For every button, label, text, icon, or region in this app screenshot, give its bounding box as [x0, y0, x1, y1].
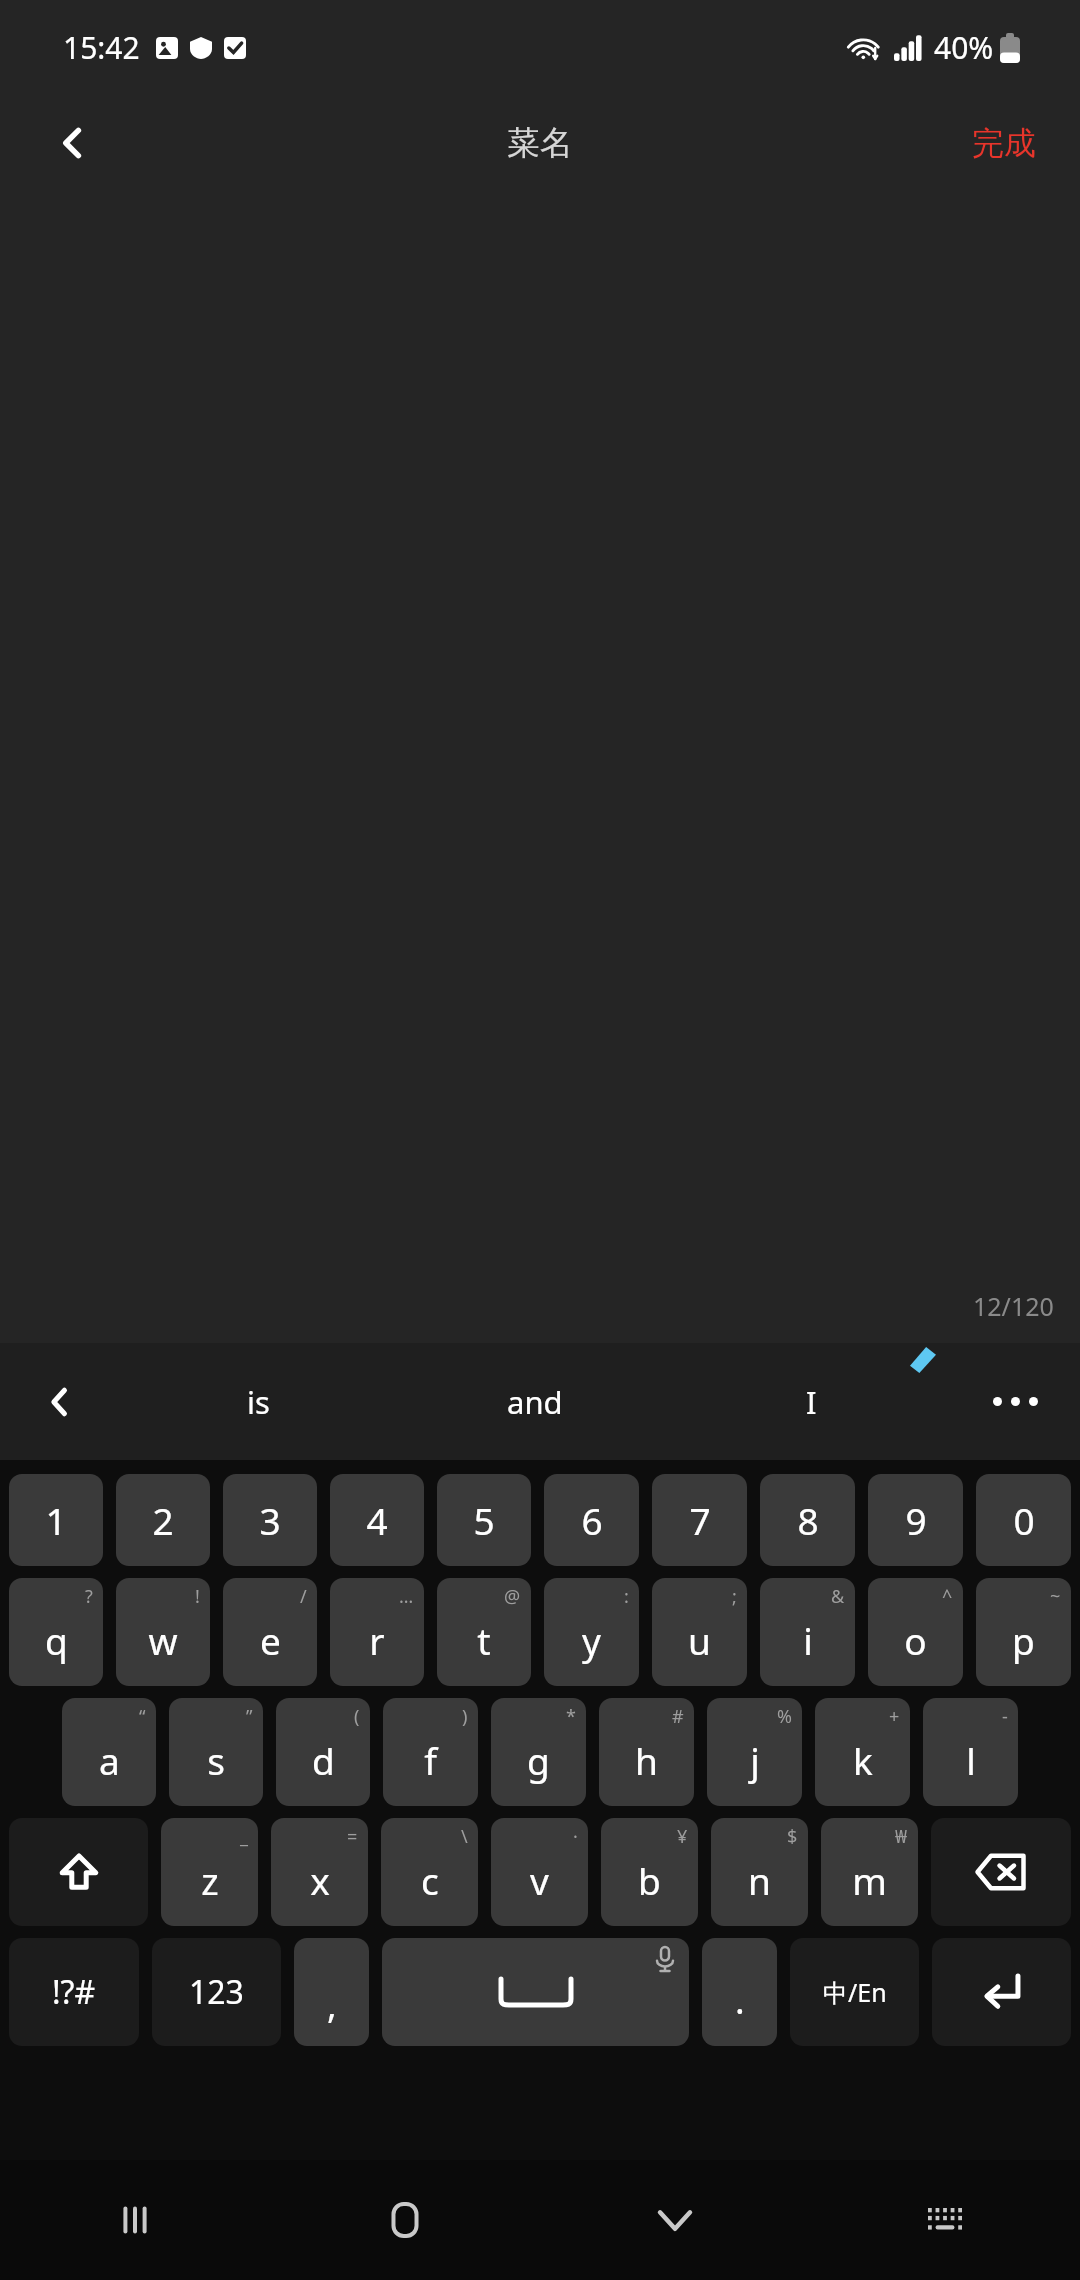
button[interactable]: 完成 [958, 113, 1050, 173]
staticText: u [688, 1615, 711, 1665]
staticText: 中/En [823, 1975, 887, 2009]
staticText: / [300, 1584, 307, 1609]
staticText: · [573, 1824, 578, 1849]
button[interactable]: ; [652, 1578, 747, 1686]
staticText: p [1012, 1615, 1035, 1665]
staticText: & [831, 1584, 845, 1609]
staticText: . [735, 1976, 745, 2025]
button[interactable]: 2 [116, 1474, 210, 1566]
button[interactable]: Period [702, 1938, 777, 2046]
button[interactable]: 9 [868, 1474, 963, 1566]
staticText: ~ [1050, 1584, 1061, 1609]
button[interactable]: 1 [9, 1474, 103, 1566]
button[interactable]: 3 [223, 1474, 317, 1566]
button[interactable]: Back [40, 110, 106, 176]
button[interactable]: = [271, 1818, 368, 1926]
button[interactable]: 中/En [790, 1938, 919, 2046]
staticText: = [347, 1824, 358, 1849]
button[interactable]: : [544, 1578, 639, 1686]
staticText: 6 [581, 1495, 603, 1545]
staticText: 9 [905, 1495, 927, 1545]
button[interactable]: ₩ [821, 1818, 918, 1926]
staticText: I [806, 1381, 817, 1423]
staticText: t [477, 1615, 491, 1665]
button[interactable]: and [396, 1343, 673, 1460]
button[interactable]: ^ [868, 1578, 963, 1686]
button[interactable]: 123 [152, 1938, 281, 2046]
staticText: 菜名 [507, 122, 573, 164]
staticText: g [527, 1735, 550, 1785]
button[interactable]: Backspace [931, 1818, 1071, 1926]
button[interactable]: ( [276, 1698, 370, 1806]
staticText: 123 [189, 1970, 244, 2014]
staticText: 40% [934, 27, 994, 68]
staticText: ) [462, 1704, 468, 1729]
staticText: b [638, 1855, 661, 1905]
button[interactable]: Shift [9, 1818, 148, 1926]
button[interactable]: # [599, 1698, 694, 1806]
button[interactable]: \ [381, 1818, 478, 1926]
button[interactable]: is [120, 1343, 396, 1460]
staticText: - [1002, 1704, 1008, 1729]
staticText: r [369, 1615, 385, 1665]
button[interactable]: 7 [652, 1474, 747, 1566]
button[interactable]: 4 [330, 1474, 424, 1566]
button[interactable]: ) [383, 1698, 478, 1806]
staticText: 完成 [972, 123, 1036, 163]
button[interactable]: Home [270, 2160, 540, 2280]
staticText: ? [85, 1584, 93, 1609]
button[interactable]: Hide keyboard [540, 2160, 810, 2280]
button[interactable]: More options [950, 1343, 1080, 1460]
button[interactable]: Change keyboard [810, 2160, 1080, 2280]
staticText: 2 [152, 1495, 174, 1545]
staticText: _ [240, 1824, 248, 1849]
button[interactable]: Previous [0, 1343, 120, 1460]
button[interactable]: ? [9, 1578, 103, 1686]
button[interactable]: Recent apps [0, 2160, 270, 2280]
staticText: d [312, 1735, 335, 1785]
button[interactable]: $ [711, 1818, 808, 1926]
staticText: # [672, 1704, 684, 1729]
button[interactable]: & [760, 1578, 855, 1686]
staticText: 12/120 [973, 1289, 1054, 1323]
button[interactable]: Enter [932, 1938, 1071, 2046]
button[interactable]: … [330, 1578, 424, 1686]
staticText: , [327, 1980, 337, 2029]
button[interactable]: ~ [976, 1578, 1071, 1686]
staticText: and [507, 1381, 563, 1423]
button[interactable]: - [923, 1698, 1018, 1806]
staticText: % [777, 1704, 792, 1729]
staticText: !?# [52, 1970, 96, 2014]
button[interactable]: Comma [294, 1938, 369, 2046]
button[interactable]: ” [169, 1698, 263, 1806]
staticText: x [310, 1855, 330, 1905]
button[interactable]: % [707, 1698, 802, 1806]
button[interactable]: ! [116, 1578, 210, 1686]
staticText: o [904, 1615, 927, 1665]
button[interactable]: !?# [9, 1938, 139, 2046]
button[interactable]: 5 [437, 1474, 531, 1566]
staticText: : [624, 1584, 629, 1609]
staticText: 3 [259, 1495, 281, 1545]
staticText: ! [195, 1584, 200, 1609]
staticText: q [45, 1615, 68, 1665]
button[interactable]: Space [382, 1938, 689, 2046]
button[interactable]: @ [437, 1578, 531, 1686]
button[interactable]: “ [62, 1698, 156, 1806]
button[interactable]: 8 [760, 1474, 855, 1566]
staticText: ₩ [895, 1824, 908, 1849]
button[interactable]: / [223, 1578, 317, 1686]
staticText: a [99, 1735, 120, 1785]
button[interactable]: · [491, 1818, 588, 1926]
button[interactable]: 6 [544, 1474, 639, 1566]
staticText: + [889, 1704, 900, 1729]
staticText: 8 [797, 1495, 819, 1545]
staticText: s [207, 1735, 225, 1785]
button[interactable]: + [815, 1698, 910, 1806]
button[interactable]: ¥ [601, 1818, 698, 1926]
staticText: j [750, 1735, 760, 1785]
button[interactable]: _ [161, 1818, 258, 1926]
button[interactable]: 0 [976, 1474, 1071, 1566]
button[interactable]: I [673, 1343, 950, 1460]
button[interactable]: * [491, 1698, 586, 1806]
